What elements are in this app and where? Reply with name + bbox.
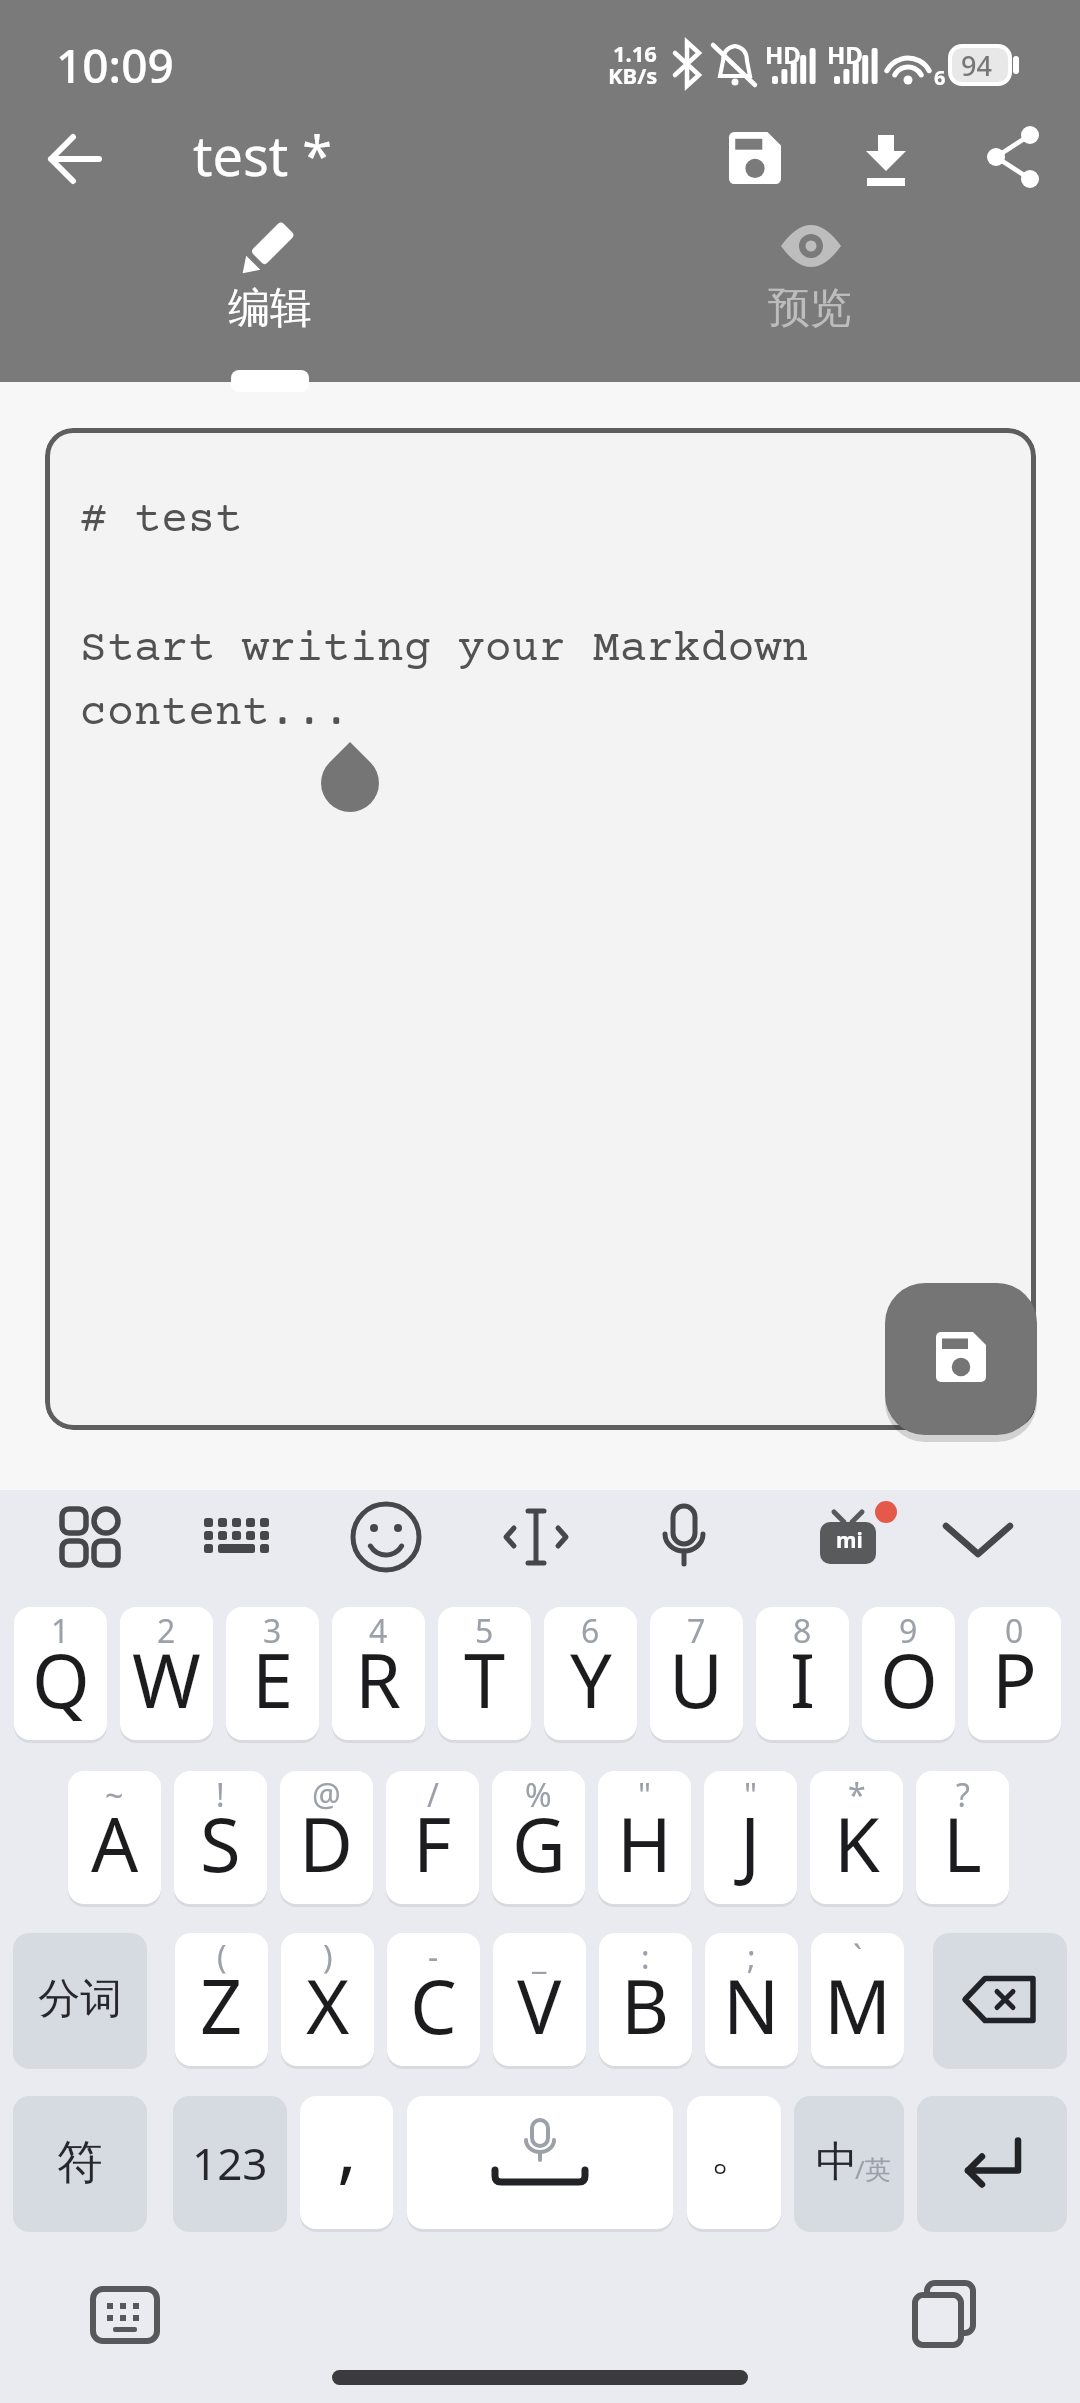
button[interactable]: 。 [687,2096,781,2229]
staticText: F [413,1793,452,1894]
staticText: K [834,1793,880,1894]
button[interactable]: 4 [332,1607,425,1740]
staticText: X [306,1955,350,2056]
button[interactable] [40,124,110,194]
staticText: 7 [687,1609,706,1653]
button[interactable] [332,2370,748,2385]
button[interactable]: 123 [173,2096,287,2229]
staticText: ; [747,1935,756,1979]
staticText: ) [323,1935,333,1979]
staticText: U [669,1629,724,1730]
staticText: HD [765,38,801,71]
button[interactable]: ) [281,1933,374,2066]
button[interactable]: 8 [756,1607,849,1740]
staticText: 5 [475,1609,494,1653]
staticText: 6 [934,64,946,91]
button[interactable] [85,2275,165,2355]
button[interactable] [917,2096,1067,2229]
staticText: 6 [581,1609,600,1653]
button[interactable]: 中 [794,2096,904,2229]
staticText: 中 [816,2136,858,2189]
staticText: 分词 [38,1973,122,2026]
button[interactable] [851,123,921,193]
button[interactable] [407,2096,673,2229]
staticText: Y [570,1629,612,1730]
button[interactable]: # test Start writing your Markdown conte… [45,428,1036,1430]
staticText: : [641,1935,650,1979]
staticText: 2 [157,1609,176,1653]
staticText: W [132,1629,201,1730]
button[interactable]: " [704,1771,797,1904]
button[interactable]: % [492,1771,585,1904]
staticText: _ [532,1935,547,1979]
button[interactable]: ( [175,1933,268,2066]
button[interactable] [199,1502,275,1572]
staticText: * [848,1773,866,1817]
staticText: S [200,1793,241,1894]
button[interactable]: 5 [438,1607,531,1740]
staticText: ? [956,1773,970,1817]
staticText: 编辑 [228,282,312,335]
staticText: ! [216,1773,225,1817]
staticText: A [91,1793,139,1894]
button[interactable] [978,122,1048,192]
button[interactable] [940,1502,1016,1572]
staticText: D [299,1793,354,1894]
staticText: L [943,1793,982,1894]
button[interactable]: ~ [68,1771,161,1904]
button[interactable] [720,123,790,193]
button[interactable]: ; [705,1933,798,2066]
button[interactable]: 2 [120,1607,213,1740]
staticText: B [621,1955,670,2056]
button[interactable] [885,1283,1037,1435]
button[interactable]: 符 [13,2096,147,2229]
button[interactable] [646,1502,722,1572]
button[interactable]: * [810,1771,903,1904]
button[interactable]: 分词 [13,1933,147,2066]
button[interactable]: 1 [14,1607,107,1740]
button[interactable] [498,1502,574,1572]
button[interactable] [905,2275,985,2355]
staticText: C [410,1955,457,2056]
staticText: I [790,1629,816,1730]
button[interactable]: 0 [968,1607,1061,1740]
button[interactable] [55,1502,125,1572]
button[interactable]: 9 [862,1607,955,1740]
staticText: test * [193,118,333,192]
button[interactable]: " [598,1771,691,1904]
staticText: E [252,1629,294,1730]
button[interactable]: ? [916,1771,1009,1904]
staticText: - [428,1935,439,1979]
button[interactable]: mi [806,1502,896,1572]
button[interactable]: - [387,1933,480,2066]
button[interactable]: 编辑 [0,196,540,382]
button[interactable] [933,1933,1067,2066]
staticText: ( [217,1935,227,1979]
staticText: M [824,1955,892,2056]
button[interactable]: ! [174,1771,267,1904]
staticText: 4 [369,1609,388,1653]
button[interactable]: / [386,1771,479,1904]
staticText: J [740,1793,761,1894]
button[interactable]: , [300,2096,393,2229]
button[interactable]: : [599,1933,692,2066]
button[interactable]: 预览 [540,196,1080,382]
staticText: 3 [263,1609,282,1653]
staticText: 1.16 [613,38,657,68]
staticText: 。 [710,2123,758,2183]
staticText: R [355,1629,402,1730]
staticText: , [337,2096,357,2197]
staticText: /英 [855,2151,891,2187]
button[interactable] [348,1502,424,1572]
button[interactable]: 6 [544,1607,637,1740]
button[interactable]: _ [493,1933,586,2066]
button[interactable]: ` [811,1933,904,2066]
button[interactable]: 7 [650,1607,743,1740]
staticText: 0 [1005,1609,1024,1653]
staticText: Q [32,1629,90,1730]
staticText: 9 [899,1609,918,1653]
staticText: G [512,1793,566,1894]
button[interactable]: 3 [226,1607,319,1740]
staticText: HD [827,38,863,71]
button[interactable]: @ [280,1771,373,1904]
